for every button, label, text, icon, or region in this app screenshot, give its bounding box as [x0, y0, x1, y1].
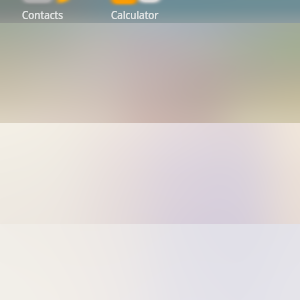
staticText: Contacts [22, 8, 63, 22]
staticText: Calculator [111, 8, 159, 22]
button[interactable]: Recent apps [0, 0, 300, 23]
